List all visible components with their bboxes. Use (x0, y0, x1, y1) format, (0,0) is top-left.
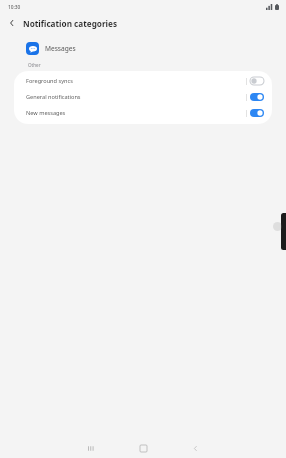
button[interactable]: Messages (0, 37, 286, 59)
button[interactable]: New messages (14, 105, 272, 121)
staticText: 10:30 (8, 4, 21, 11)
button[interactable]: Home (133, 438, 153, 458)
staticText: New messages (26, 109, 66, 117)
staticText: Messages (45, 44, 76, 53)
staticText: Other (28, 62, 41, 68)
staticText: General notifications (26, 93, 81, 101)
button[interactable]: Back (185, 438, 205, 458)
button[interactable]: Back (4, 15, 20, 31)
button[interactable]: Foreground syncs (14, 73, 272, 89)
button[interactable]: Recents (81, 438, 101, 458)
button[interactable]: General notifications (14, 89, 272, 105)
staticText: Foreground syncs (26, 77, 73, 85)
staticText: Notification categories (23, 18, 118, 29)
button[interactable]: Edge panel handle (281, 213, 286, 250)
